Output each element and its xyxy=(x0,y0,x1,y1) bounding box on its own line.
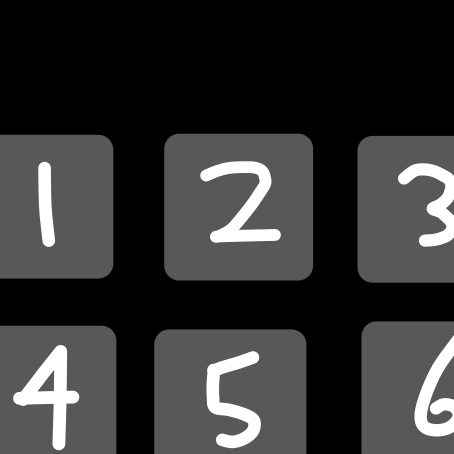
button[interactable]: 2 xyxy=(164,134,313,280)
button[interactable]: 3 xyxy=(357,136,454,283)
button[interactable]: 5 xyxy=(154,329,306,454)
button[interactable]: 6 xyxy=(361,321,454,454)
button[interactable]: 1 xyxy=(0,135,113,279)
button[interactable]: 4 xyxy=(0,326,116,454)
